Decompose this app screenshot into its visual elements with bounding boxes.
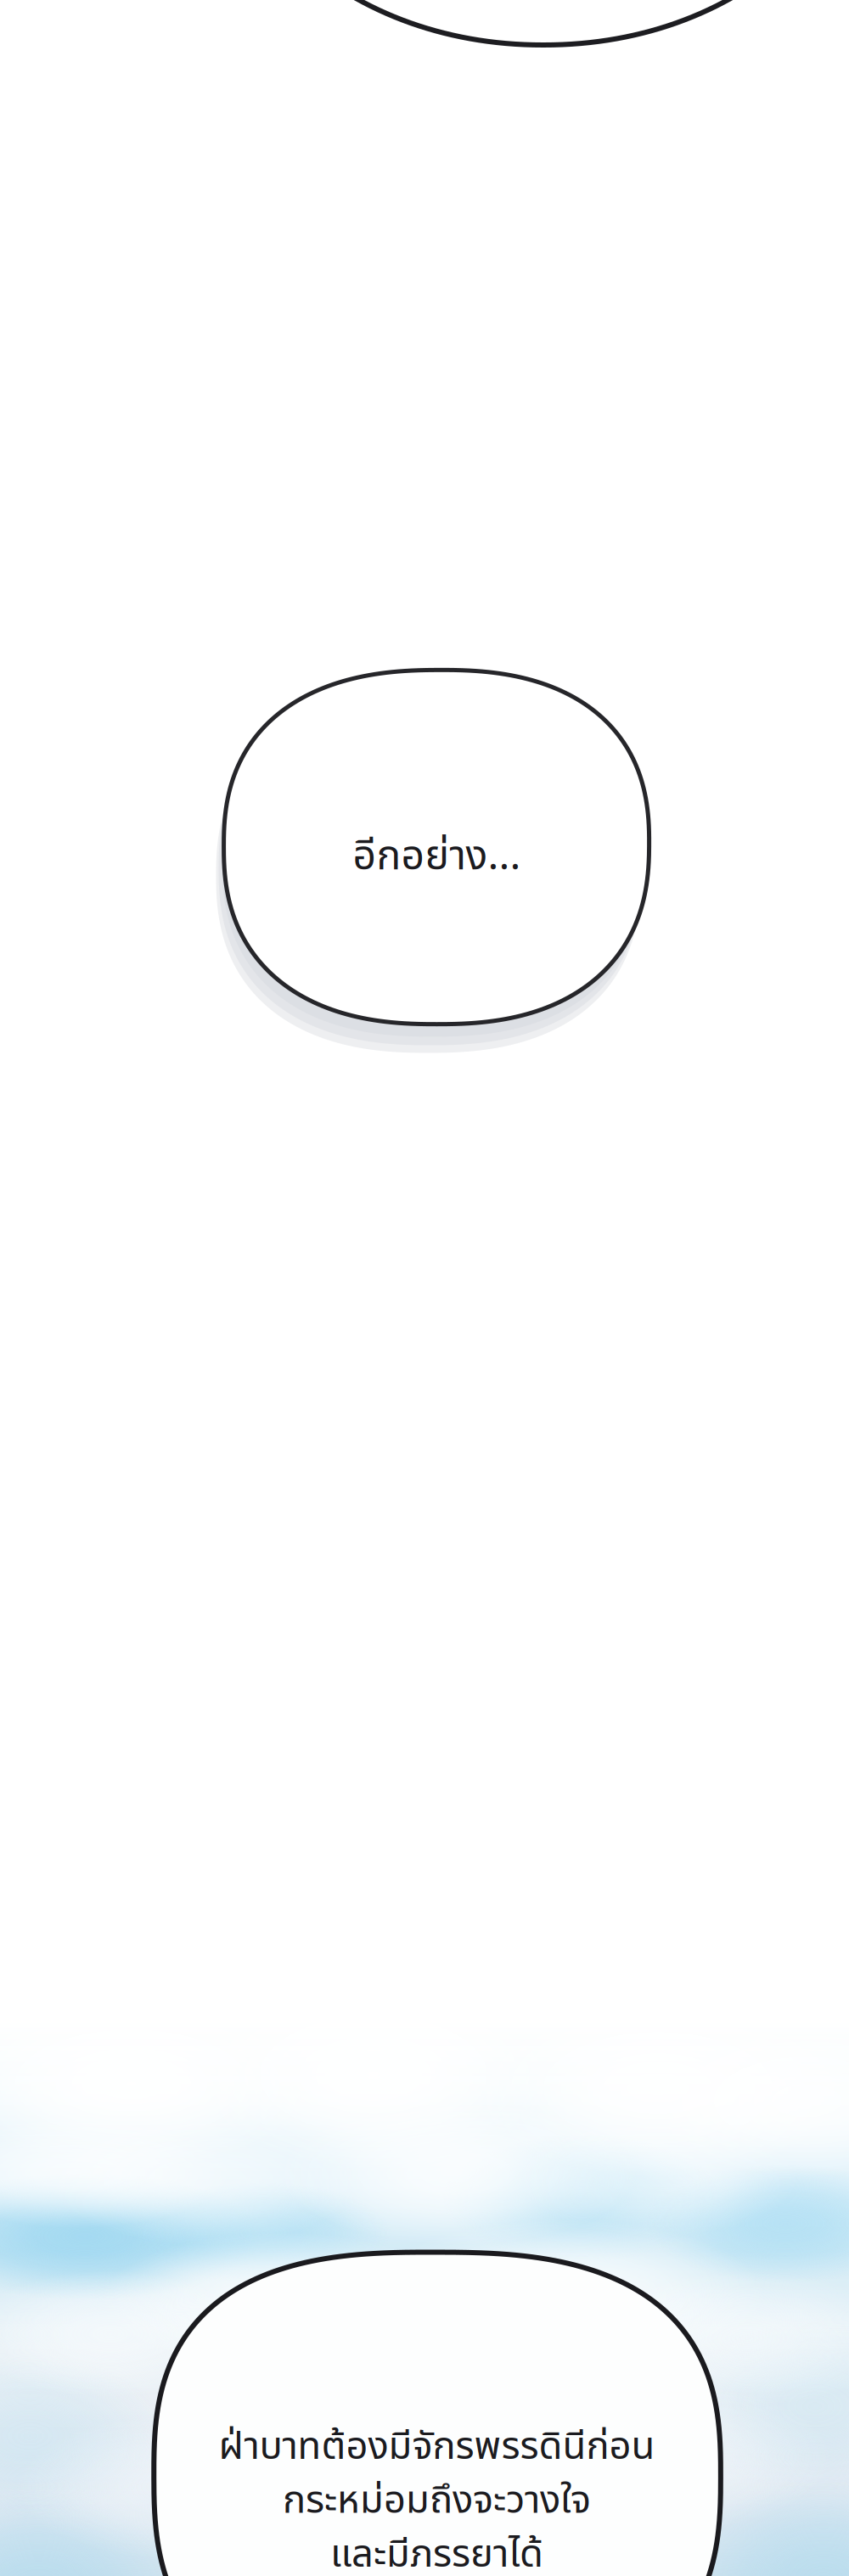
staticText: และมีภรรยาได้ <box>330 2526 543 2576</box>
staticText: ฝ่าบาทต้องมีจักรพรรดินีก่อน <box>219 2418 655 2476</box>
staticText: อีกอย่าง... <box>353 826 521 888</box>
staticText: กระหม่อมถึงจะวางใจ <box>283 2472 591 2530</box>
